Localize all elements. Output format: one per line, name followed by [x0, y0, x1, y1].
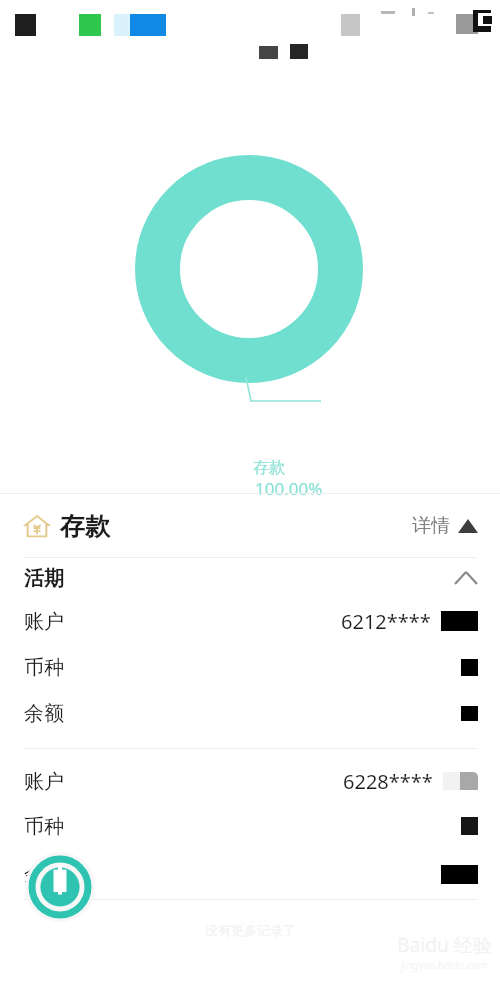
button[interactable]: 币种: [0, 803, 500, 849]
staticText: 详情: [412, 514, 450, 538]
staticText: Baidu 经验: [397, 932, 492, 958]
staticText: 账户: [24, 769, 64, 794]
button[interactable]: 币种: [0, 644, 500, 690]
staticText: 6212****: [341, 608, 431, 635]
staticText: 6228****: [343, 768, 433, 795]
staticText: 余额: [24, 701, 64, 726]
button[interactable]: 活期: [0, 558, 500, 598]
staticText: 余额: [24, 862, 64, 887]
button[interactable]: 银行标志: [25, 852, 95, 922]
button[interactable]: 余额: [0, 690, 500, 736]
button[interactable]: 余额: [0, 849, 500, 899]
staticText: jingyan.baidu.com: [401, 958, 488, 972]
staticText: 存款: [60, 511, 110, 542]
staticText: 币种: [24, 655, 64, 680]
button[interactable]: 存款: [0, 495, 500, 557]
staticText: 账户: [24, 609, 64, 634]
staticText: 100.00%: [255, 477, 323, 500]
staticText: 没有更多记录了: [205, 922, 296, 938]
staticText: 币种: [24, 814, 64, 839]
staticText: 存款: [253, 458, 285, 478]
button[interactable]: 账户: [0, 759, 500, 803]
button[interactable]: 账户: [0, 598, 500, 644]
staticText: 活期: [24, 566, 64, 591]
